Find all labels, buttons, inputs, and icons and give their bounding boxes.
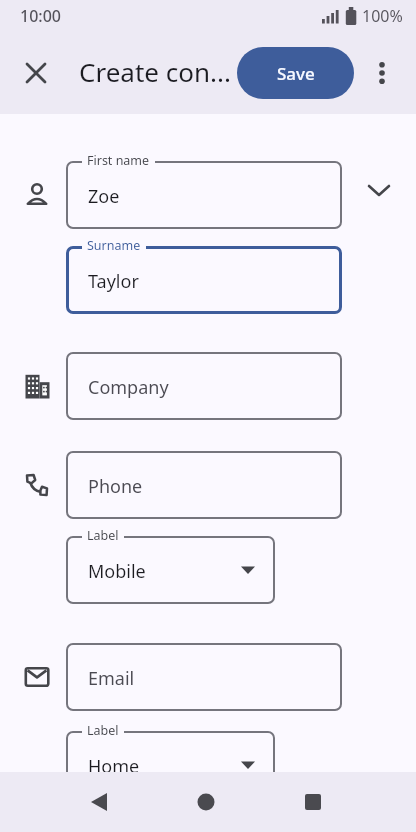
staticText: Save	[277, 62, 315, 85]
staticText: Taylor	[88, 269, 139, 294]
button[interactable]	[342, 161, 416, 229]
staticText: Email	[88, 666, 135, 691]
button[interactable]: Mobile	[66, 536, 275, 604]
staticText: Label	[87, 722, 119, 739]
button[interactable]: Company	[66, 352, 342, 420]
staticText: 10:00	[20, 5, 61, 27]
staticText: 100%	[362, 5, 403, 27]
button[interactable]	[354, 47, 410, 99]
button[interactable]: Zoe	[66, 161, 342, 229]
staticText: Phone	[88, 474, 143, 499]
button[interactable]: Email	[66, 643, 342, 711]
button[interactable]: Home	[66, 731, 275, 772]
button[interactable]: Save	[237, 47, 354, 99]
staticText: Surname	[87, 237, 141, 254]
staticText: Zoe	[88, 184, 120, 209]
button[interactable]	[14, 51, 58, 95]
staticText: Create con...	[79, 54, 231, 89]
button[interactable]	[152, 772, 259, 832]
button[interactable]	[46, 772, 152, 832]
button[interactable]: Taylor	[66, 246, 342, 314]
button[interactable]: Phone	[66, 451, 342, 519]
staticText: Home	[88, 754, 140, 772]
button[interactable]	[259, 772, 366, 832]
staticText: Label	[87, 527, 119, 544]
staticText: First name	[87, 152, 150, 169]
staticText: Company	[88, 375, 169, 400]
staticText: Mobile	[88, 559, 146, 584]
